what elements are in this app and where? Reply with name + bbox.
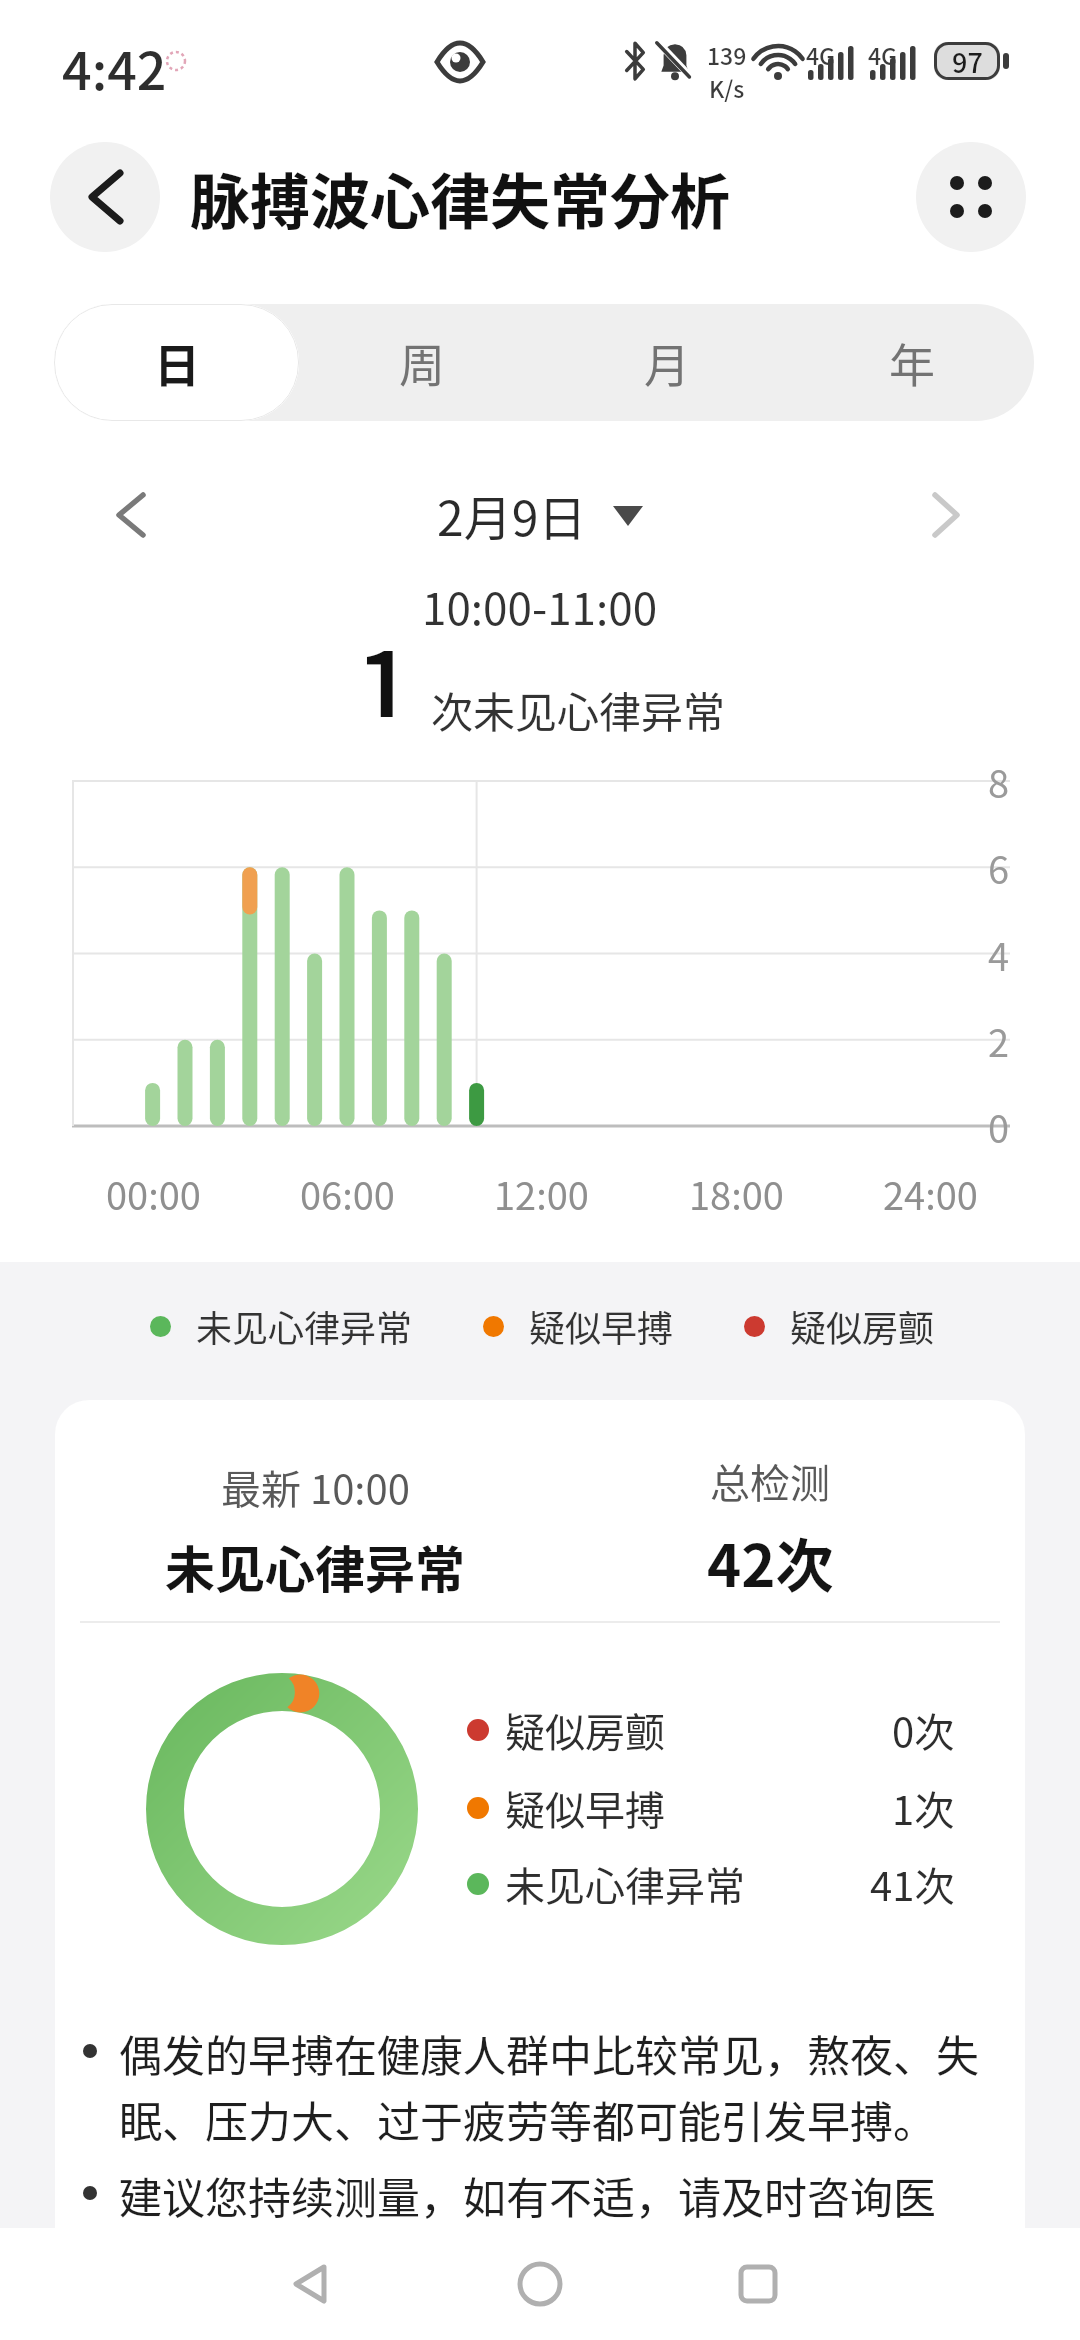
button[interactable]: 月: [544, 304, 789, 421]
staticText: 139: [707, 38, 747, 71]
staticText: 年: [889, 329, 935, 396]
staticText: 建议您持续测量，如有不适，请及时咨询医: [119, 2164, 936, 2226]
button[interactable]: [730, 2256, 786, 2312]
staticText: 次未见心律异常: [431, 679, 726, 740]
staticText: 6: [988, 840, 1010, 894]
staticText: 最新 10:00: [221, 1458, 410, 1516]
staticText: 12:00: [494, 1166, 589, 1218]
staticText: 未见心律异常: [505, 1855, 745, 1913]
staticText: 42次: [707, 1520, 834, 1604]
button[interactable]: [916, 142, 1026, 252]
staticText: 总检测: [710, 1452, 830, 1510]
staticText: 2: [988, 1013, 1010, 1067]
staticText: 2月9日: [437, 480, 587, 550]
staticText: 24:00: [883, 1166, 978, 1218]
staticText: 8: [988, 754, 1010, 808]
staticText: 周: [399, 329, 445, 396]
button[interactable]: [906, 470, 986, 560]
button[interactable]: [512, 2256, 568, 2312]
staticText: 97: [952, 42, 983, 80]
button[interactable]: [282, 2256, 338, 2312]
button[interactable]: [90, 470, 170, 560]
button[interactable]: 年: [789, 304, 1034, 421]
staticText: 未见心律异常: [165, 1530, 465, 1602]
staticText: 1次: [892, 1779, 955, 1837]
staticText: K/s: [709, 71, 745, 104]
staticText: 日: [154, 329, 200, 396]
button[interactable]: 周: [299, 304, 544, 421]
staticText: 0: [988, 1099, 1010, 1153]
button[interactable]: 日: [54, 304, 299, 421]
staticText: 4G: [806, 38, 836, 71]
staticText: 疑似早搏: [529, 1300, 674, 1352]
staticText: 疑似房颤: [790, 1300, 935, 1352]
staticText: 41次: [870, 1855, 955, 1913]
button[interactable]: 2月9日: [0, 470, 1080, 560]
staticText: 10:00-11:00: [422, 574, 658, 638]
staticText: 偶发的早搏在健康人群中比较常见，熬夜、失 眠、压力大、过于疲劳等都可能引发早搏。: [119, 2022, 979, 2150]
staticText: 月: [644, 329, 690, 396]
staticText: 0次: [892, 1701, 955, 1759]
staticText: 00:00: [106, 1166, 201, 1218]
staticText: 疑似房颤: [505, 1701, 665, 1759]
staticText: 4:42: [62, 30, 167, 105]
staticText: 疑似早搏: [505, 1779, 665, 1837]
button[interactable]: [50, 142, 160, 252]
staticText: 4G: [868, 38, 898, 71]
staticText: 06:00: [300, 1166, 395, 1218]
staticText: 4: [988, 927, 1010, 981]
staticText: 脉搏波心律失常分析: [190, 154, 730, 241]
staticText: 1: [355, 607, 415, 717]
staticText: 18:00: [689, 1166, 784, 1218]
staticText: 未见心律异常: [196, 1300, 413, 1352]
